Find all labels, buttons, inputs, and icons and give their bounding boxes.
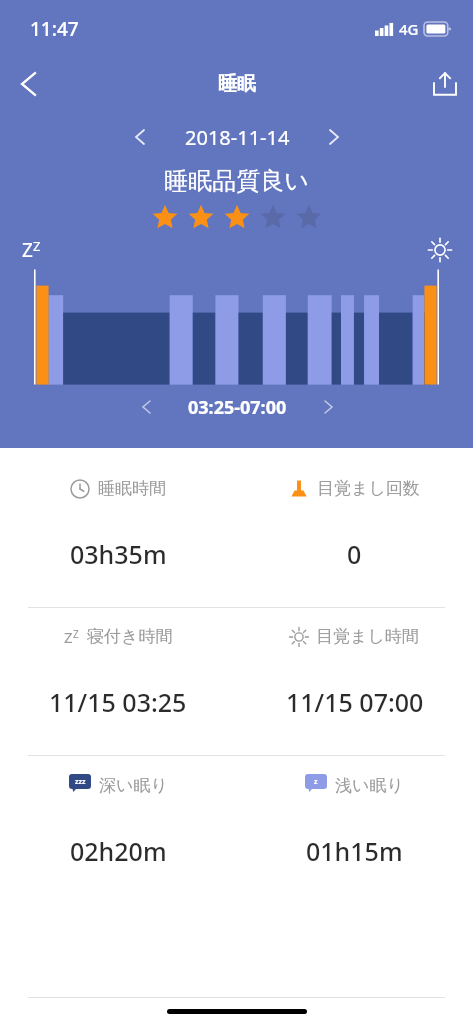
button[interactable]: Z bbox=[0, 626, 236, 647]
staticText: Z bbox=[73, 627, 79, 641]
staticText: 02h20m bbox=[70, 834, 167, 868]
button[interactable]: Back bbox=[0, 58, 56, 110]
staticText: 01h15m bbox=[306, 834, 403, 868]
button[interactable]: 目覚まし回数 bbox=[236, 478, 473, 499]
staticText: 寝付き時間 bbox=[87, 626, 173, 647]
button[interactable]: 睡眠時間 bbox=[0, 478, 236, 499]
staticText: 11/15 07:00 bbox=[286, 685, 424, 719]
staticText: 03h35m bbox=[70, 537, 167, 571]
staticText: 浅い眠り bbox=[335, 775, 404, 796]
staticText: 2018-11-14 bbox=[185, 124, 290, 151]
staticText: Z bbox=[33, 237, 41, 254]
button[interactable]: zzz bbox=[0, 774, 236, 796]
staticText: 深い眠り bbox=[99, 775, 168, 796]
staticText: Z bbox=[64, 627, 73, 647]
button[interactable]: Previous day bbox=[118, 120, 162, 154]
staticText: 睡眠 bbox=[218, 72, 256, 96]
button[interactable]: Next day bbox=[312, 120, 356, 154]
staticText: 0 bbox=[347, 537, 362, 571]
button[interactable]: Share bbox=[417, 58, 473, 110]
staticText: z bbox=[314, 777, 318, 787]
button[interactable]: Previous period bbox=[125, 391, 167, 423]
staticText: 4G bbox=[399, 19, 419, 39]
staticText: 目覚まし回数 bbox=[317, 478, 420, 499]
staticText: 11:47 bbox=[30, 16, 79, 42]
staticText: 睡眠品質良い bbox=[0, 166, 473, 196]
staticText: 目覚まし時間 bbox=[316, 626, 419, 647]
button[interactable]: 目覚まし時間 bbox=[236, 626, 473, 647]
staticText: 03:25-07:00 bbox=[188, 395, 287, 420]
staticText: 睡眠時間 bbox=[98, 478, 166, 499]
staticText: 11/15 03:25 bbox=[49, 685, 187, 719]
button[interactable]: Next period bbox=[307, 391, 349, 423]
staticText: zzz bbox=[75, 777, 86, 787]
button[interactable]: z bbox=[236, 774, 473, 796]
staticText: Z bbox=[22, 237, 33, 263]
